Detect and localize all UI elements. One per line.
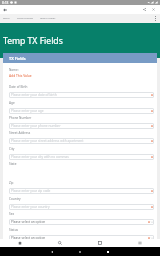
staticText: Please select an option [11, 220, 46, 224]
button[interactable]: Please enter your age [9, 108, 154, 114]
staticText: Please enter your phone number [11, 124, 61, 128]
staticText: Zip [9, 181, 14, 185]
staticText: Please enter your country [11, 205, 50, 209]
staticText: Name: [9, 68, 19, 72]
staticText: Country [9, 197, 21, 201]
staticText: Age [9, 101, 15, 105]
button[interactable]: Dev.to [0, 14, 12, 23]
staticText: Street Address [9, 131, 31, 135]
button[interactable]: Please enter your phone number [9, 123, 154, 129]
staticText: Add This Value [9, 73, 32, 77]
button[interactable]: Please enter your zip code [9, 188, 154, 194]
staticText: 8:18 [2, 1, 9, 5]
button[interactable]: Search [40, 239, 80, 247]
staticText: Status [9, 228, 19, 232]
staticText: Please enter your street address with ap… [11, 139, 84, 143]
button[interactable]: Share [141, 6, 148, 13]
staticText: Temp TX Fields [40, 17, 56, 20]
staticText: State [9, 162, 17, 166]
button[interactable]: Home [0, 239, 40, 247]
button[interactable]: Temp TX Fields [38, 14, 57, 23]
button[interactable]: Close [150, 6, 157, 13]
button[interactable]: Please select an option [9, 219, 154, 225]
staticText: Please select an option [11, 236, 46, 240]
button[interactable]: Back [1, 6, 9, 14]
button[interactable]: Please enter your date of birth [9, 92, 154, 98]
button[interactable]: Menu [120, 239, 160, 247]
staticText: COVID Tracking [17, 17, 33, 20]
button[interactable]: Recent apps [104, 248, 112, 256]
staticText: Temp TX Fields [3, 35, 63, 47]
button[interactable]: Please select an option [9, 235, 154, 241]
button[interactable]: Home [76, 248, 84, 256]
staticText: Please enter your city with no commas [11, 155, 69, 159]
staticText: Phone Number [9, 116, 32, 120]
button[interactable]: Tabs [80, 239, 120, 247]
button[interactable]: Back [48, 248, 56, 256]
staticText: Dev.to [3, 17, 10, 20]
staticText: Please enter your age [11, 109, 44, 113]
button[interactable]: Please enter your country [9, 204, 154, 210]
button[interactable]: COVID Tracking [12, 14, 38, 23]
button[interactable]: More options [151, 14, 160, 23]
staticText: Please enter your date of birth [11, 93, 57, 97]
button[interactable]: Please enter your city with no commas [9, 154, 154, 160]
button[interactable]: Please enter your street address with ap… [9, 138, 154, 144]
staticText: TX Fields [9, 56, 26, 61]
staticText: Please enter your zip code [11, 189, 51, 193]
staticText: Date of Birth [9, 85, 28, 89]
staticText: Sex [9, 212, 15, 216]
staticText: City [9, 147, 15, 151]
